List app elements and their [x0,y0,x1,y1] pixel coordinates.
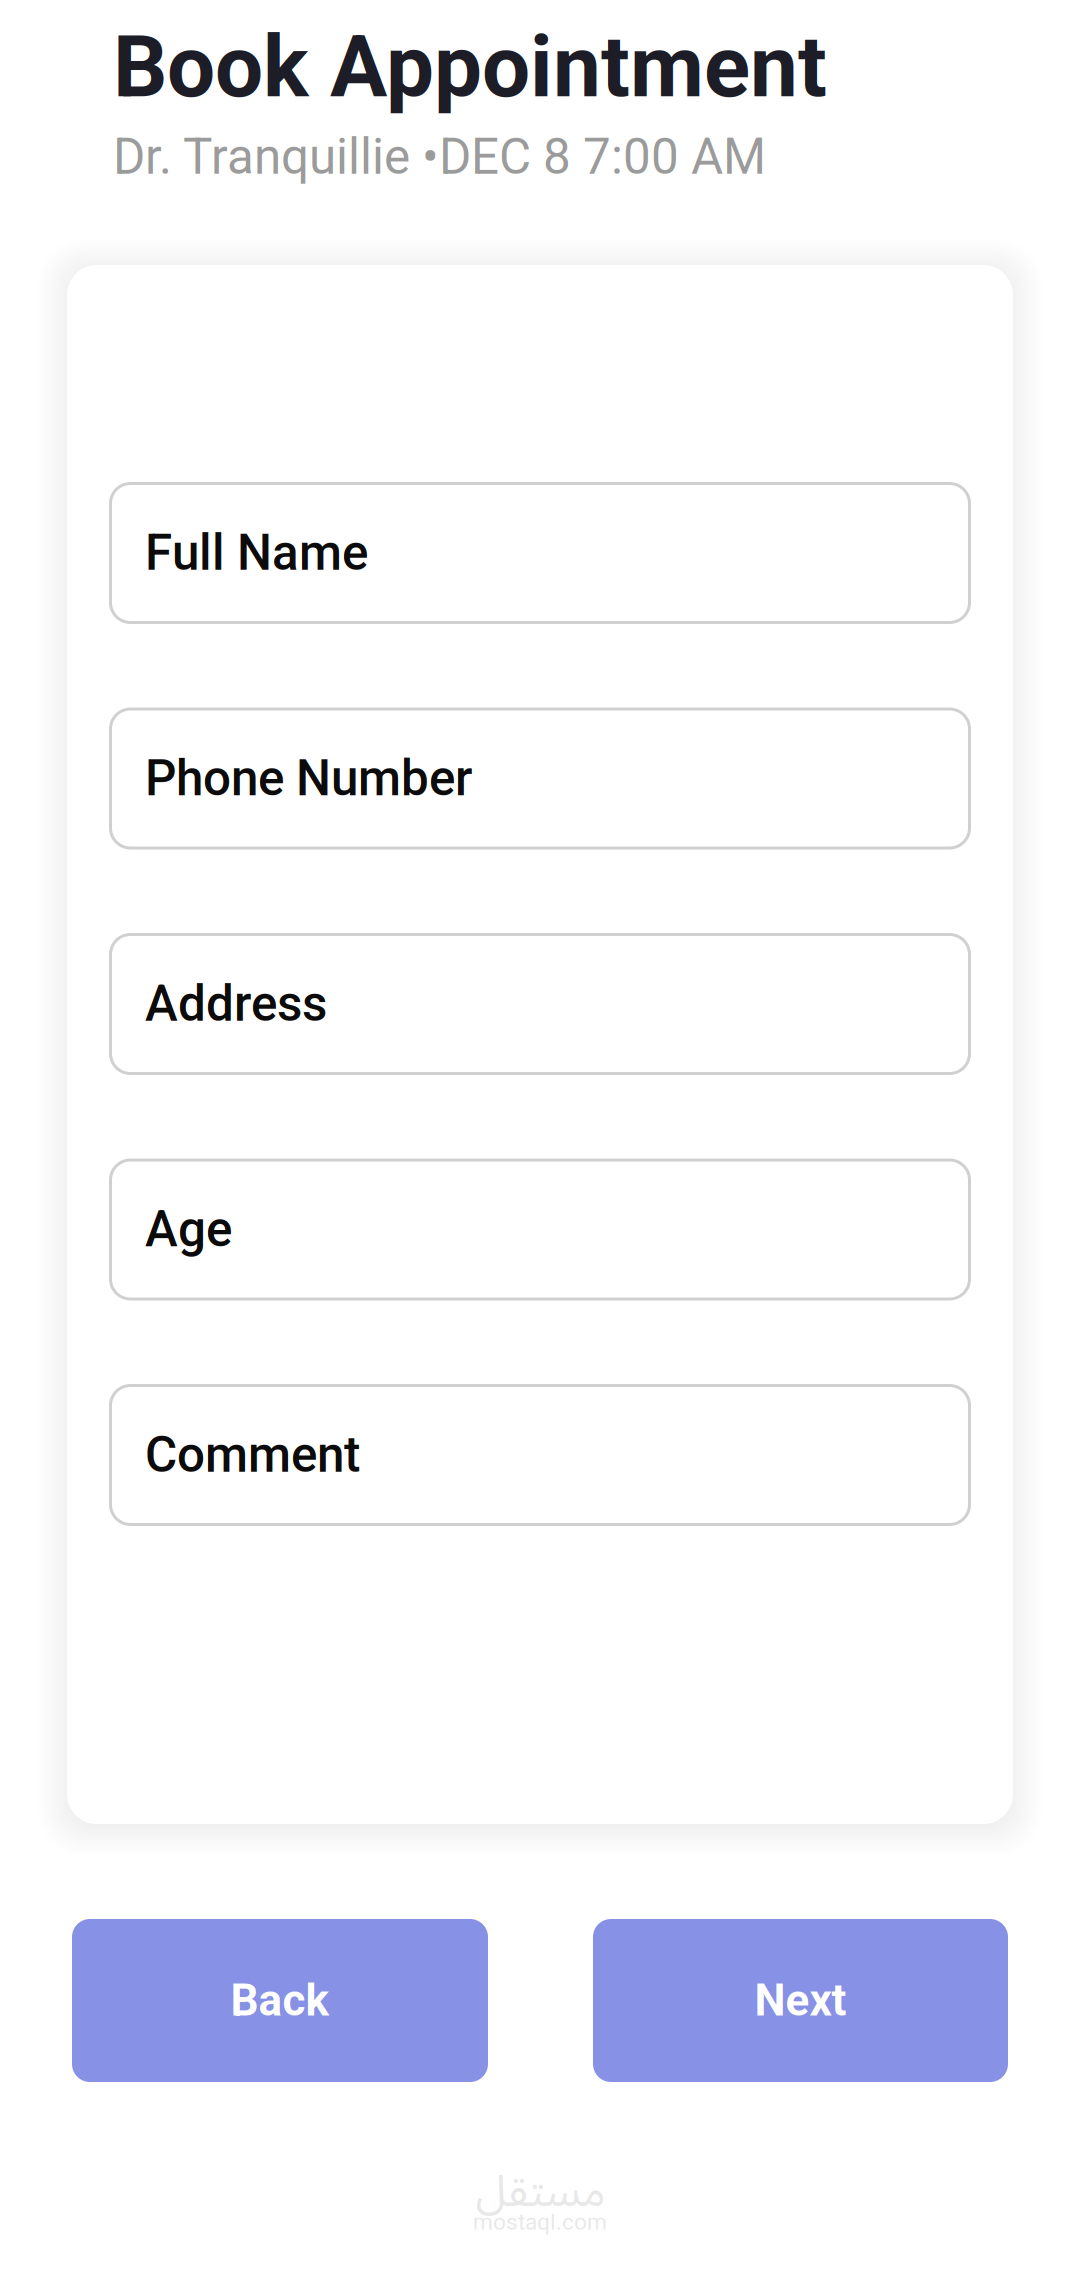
staticText: Full Name [145,524,368,582]
button[interactable]: Back [72,1919,488,2082]
staticText: Phone Number [145,750,472,807]
staticText: Comment [145,1426,360,1484]
staticText: Next [754,1975,846,2026]
staticText: Age [145,1201,232,1258]
button[interactable]: Comment [109,1384,971,1526]
button[interactable]: Full Name [109,482,971,624]
staticText: Back [230,1975,329,2026]
button[interactable]: Phone Number [109,707,971,849]
button[interactable]: Next [593,1919,1008,2082]
staticText: Dr. Tranquillie •DEC 8 7:00 AM [113,128,766,186]
button[interactable]: Age [109,1158,971,1300]
staticText: Address [145,975,327,1033]
button[interactable]: Address [109,933,971,1075]
staticText: mostaql.com [473,2209,607,2235]
staticText: Book Appointment [113,17,827,117]
staticText: مستقل [475,2145,605,2238]
